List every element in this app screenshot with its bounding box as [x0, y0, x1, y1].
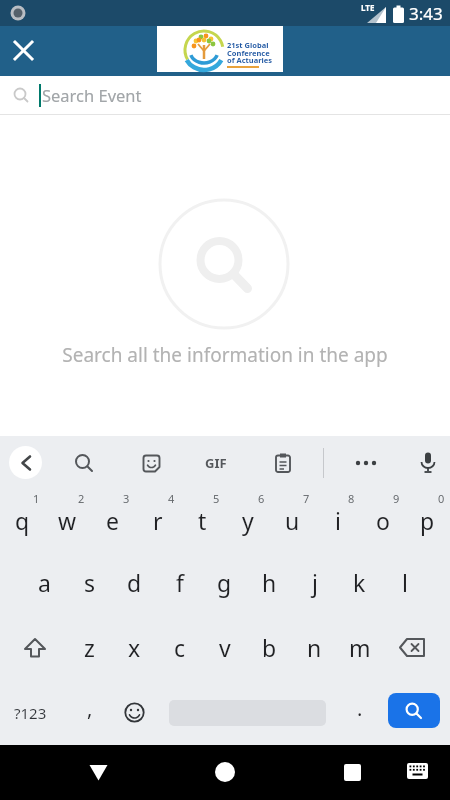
button[interactable] [0, 615, 67, 680]
staticText: p [420, 505, 435, 536]
button[interactable]: w [45, 490, 90, 550]
staticText: z [84, 632, 95, 663]
staticText: i [335, 505, 341, 536]
button[interactable]: x [112, 615, 157, 680]
button[interactable]: u [270, 490, 315, 550]
button[interactable]: c [157, 615, 202, 680]
button[interactable] [135, 447, 167, 479]
staticText: 1 [33, 491, 40, 506]
staticText: 0 [438, 491, 445, 506]
staticText: 2 [78, 491, 85, 506]
staticText: ?123 [14, 703, 47, 723]
staticText: g [217, 567, 232, 598]
staticText: LTE [361, 2, 375, 13]
button[interactable]: a [22, 550, 67, 615]
button[interactable] [68, 447, 100, 479]
button[interactable]: s [67, 550, 112, 615]
button[interactable]: o [360, 490, 405, 550]
button[interactable] [332, 752, 372, 792]
staticText: q [15, 505, 30, 536]
staticText: o [376, 505, 390, 536]
button[interactable]: v [202, 615, 247, 680]
staticText: of Actuaries [227, 55, 273, 65]
staticText: r [153, 505, 163, 536]
button[interactable] [205, 752, 245, 792]
staticText: f [176, 567, 184, 598]
staticText: l [402, 567, 408, 598]
button[interactable]: m [337, 615, 382, 680]
button[interactable]: Search Event [0, 76, 450, 114]
button[interactable]: i [315, 490, 360, 550]
button[interactable]: h [247, 550, 292, 615]
staticText: . [357, 695, 363, 722]
button[interactable]: f [157, 550, 202, 615]
staticText: e [106, 505, 119, 536]
staticText: 4 [168, 491, 175, 506]
staticText: a [38, 567, 51, 598]
button[interactable]: j [292, 550, 337, 615]
staticText: b [262, 632, 277, 663]
button[interactable] [8, 35, 38, 65]
staticText: GIF [205, 454, 227, 472]
staticText: d [127, 567, 142, 598]
button[interactable]: e [90, 490, 135, 550]
staticText: u [285, 505, 300, 536]
staticText: 21st Global [227, 40, 269, 50]
button[interactable]: p [405, 490, 450, 550]
button[interactable]: d [112, 550, 157, 615]
staticText: w [58, 505, 77, 536]
staticText: k [353, 567, 366, 598]
button[interactable] [382, 680, 450, 745]
button[interactable] [412, 447, 444, 479]
button[interactable]: 21st Global [157, 26, 283, 72]
button[interactable]: b [247, 615, 292, 680]
button[interactable] [382, 615, 450, 680]
button[interactable] [9, 446, 42, 479]
staticText: Search all the information in the app [0, 342, 450, 368]
staticText: v [219, 632, 231, 663]
staticText: 3:43 [409, 2, 443, 25]
staticText: 3 [123, 491, 130, 506]
staticText: 5 [213, 491, 220, 506]
button[interactable]: r [135, 490, 180, 550]
staticText: Conference [227, 48, 270, 58]
button[interactable] [78, 752, 118, 792]
staticText: n [307, 632, 322, 663]
button[interactable]: y [225, 490, 270, 550]
button[interactable]: GIF [198, 447, 234, 479]
button[interactable]: t [180, 490, 225, 550]
staticText: 8 [348, 491, 355, 506]
button[interactable]: l [382, 550, 427, 615]
staticText: c [174, 632, 186, 663]
button[interactable]: ?123 [0, 680, 67, 745]
button[interactable]: z [67, 615, 112, 680]
staticText: h [262, 567, 277, 598]
button[interactable]: g [202, 550, 247, 615]
staticText: 9 [393, 491, 400, 506]
staticText: , [87, 695, 93, 722]
staticText: x [128, 632, 141, 663]
staticText: 6 [258, 491, 265, 506]
button[interactable] [112, 680, 157, 745]
button[interactable] [346, 447, 386, 479]
button[interactable]: . [337, 680, 382, 745]
button[interactable]: , [67, 680, 112, 745]
staticText: Search Event [42, 84, 142, 106]
button[interactable]: n [292, 615, 337, 680]
button[interactable]: q [0, 490, 45, 550]
button[interactable] [267, 447, 299, 479]
button[interactable] [157, 680, 337, 745]
staticText: s [84, 567, 96, 598]
button[interactable] [398, 752, 436, 790]
staticText: 7 [303, 491, 310, 506]
button[interactable]: k [337, 550, 382, 615]
staticText: y [242, 505, 254, 536]
staticText: j [312, 567, 318, 598]
staticText: m [349, 632, 371, 663]
staticText: t [198, 505, 207, 536]
